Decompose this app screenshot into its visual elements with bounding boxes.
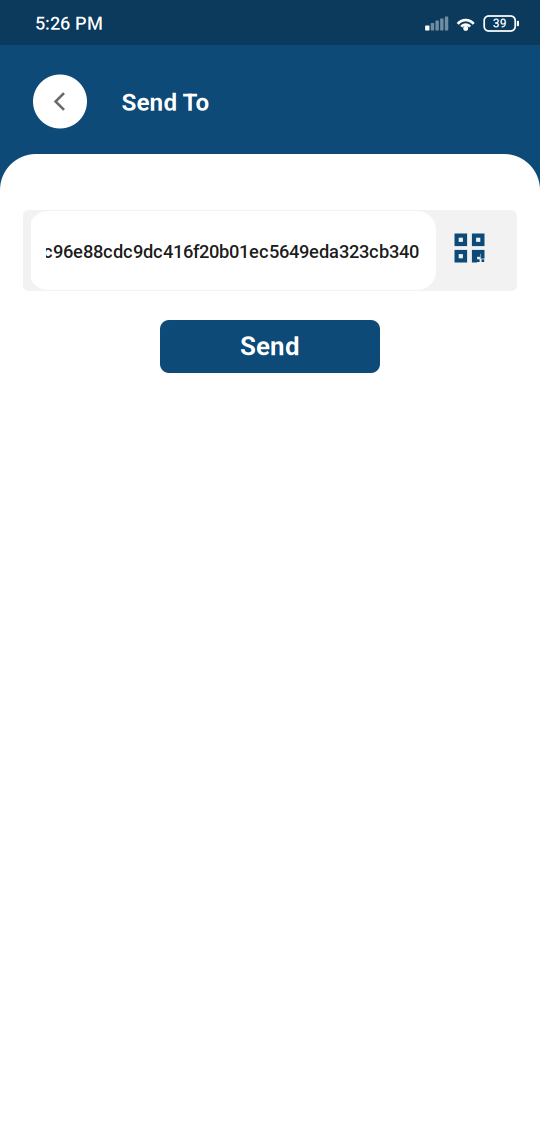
staticText: Send To: [121, 88, 209, 117]
staticText: Send: [240, 331, 300, 362]
button[interactable]: Send: [160, 320, 380, 373]
button[interactable]: Back: [33, 74, 87, 128]
staticText: 5:26 PM: [35, 13, 103, 34]
staticText: c96e88cdc9dc416f20b01ec5649eda323cb340: [43, 241, 419, 262]
button[interactable]: Scan QR code: [429, 210, 510, 286]
staticText: 39: [493, 16, 507, 31]
